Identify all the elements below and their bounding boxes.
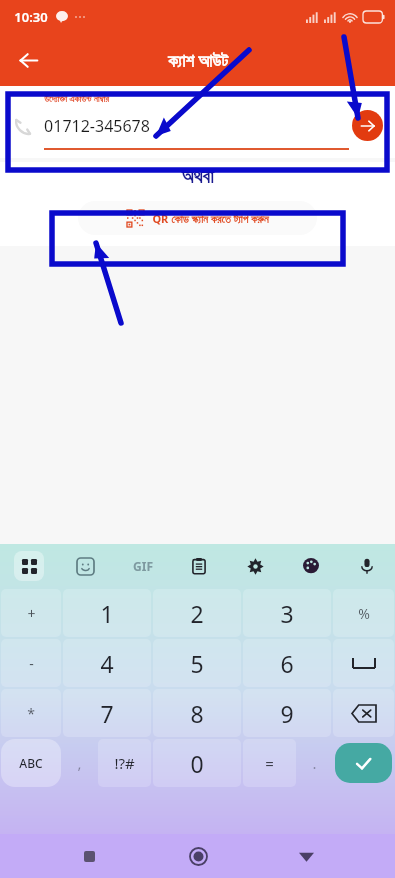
staticText: 5: [190, 648, 204, 679]
button[interactable]: 4: [63, 639, 151, 687]
button[interactable]: [333, 689, 394, 737]
button[interactable]: Stickers: [57, 544, 114, 588]
staticText: 1: [100, 598, 114, 629]
button[interactable]: %: [333, 589, 394, 637]
staticText: অথবা: [181, 168, 214, 187]
button[interactable]: Voice input: [339, 544, 395, 588]
button[interactable]: QR কোড স্ক্যান করতে ট্যাপ করুন: [78, 201, 317, 235]
staticText: !?#: [114, 753, 135, 773]
button[interactable]: Home: [178, 836, 218, 876]
button[interactable]: Submit: [352, 110, 383, 141]
button[interactable]: Apps: [0, 544, 57, 588]
button[interactable]: Recents: [69, 836, 109, 876]
button[interactable]: 7: [63, 689, 151, 737]
button[interactable]: Settings: [227, 544, 283, 588]
button[interactable]: 1: [63, 589, 151, 637]
button[interactable]: GIF: [114, 544, 171, 588]
staticText: 10:30: [14, 8, 48, 26]
button[interactable]: 8: [153, 689, 241, 737]
button[interactable]: 6: [243, 639, 331, 687]
staticText: উদ্যোক্তা একাউন্ট নাম্বার: [44, 92, 109, 104]
button[interactable]: Back: [286, 836, 326, 876]
button[interactable]: Back: [8, 40, 48, 80]
button[interactable]: !?#: [98, 739, 151, 787]
staticText: *: [27, 704, 35, 723]
button[interactable]: -: [1, 639, 61, 687]
button[interactable]: Clipboard: [171, 544, 227, 588]
staticText: 7: [100, 698, 114, 729]
button[interactable]: 01712-345678: [14, 115, 325, 137]
button[interactable]: Theme: [283, 544, 339, 588]
button[interactable]: ABC: [1, 739, 61, 787]
staticText: 4: [100, 648, 114, 679]
staticText: .: [312, 753, 317, 773]
staticText: 01712-345678: [44, 115, 150, 137]
staticText: =: [265, 753, 274, 773]
staticText: 6: [280, 648, 294, 679]
staticText: -: [29, 654, 34, 673]
staticText: 2: [190, 598, 204, 629]
button[interactable]: +: [1, 589, 61, 637]
button[interactable]: 5: [153, 639, 241, 687]
button[interactable]: 3: [243, 589, 331, 637]
staticText: ক্যাশ আউট: [168, 49, 228, 72]
staticText: 9: [280, 698, 294, 729]
button[interactable]: [333, 639, 394, 687]
button[interactable]: 0: [153, 739, 241, 787]
button[interactable]: *: [1, 689, 61, 737]
staticText: %: [358, 604, 370, 623]
button[interactable]: =: [243, 739, 296, 787]
button[interactable]: ,: [63, 739, 96, 787]
button[interactable]: 2: [153, 589, 241, 637]
staticText: +: [27, 604, 36, 623]
staticText: 0: [190, 748, 204, 779]
staticText: ABC: [19, 755, 43, 771]
button[interactable]: 9: [243, 689, 331, 737]
button[interactable]: .: [298, 739, 331, 787]
button[interactable]: Enter: [335, 743, 392, 783]
staticText: ,: [77, 753, 82, 773]
staticText: 8: [190, 698, 204, 729]
staticText: QR কোড স্ক্যান করতে ট্যাপ করুন: [152, 211, 269, 226]
staticText: GIF: [133, 558, 153, 574]
staticText: 3: [280, 598, 294, 629]
